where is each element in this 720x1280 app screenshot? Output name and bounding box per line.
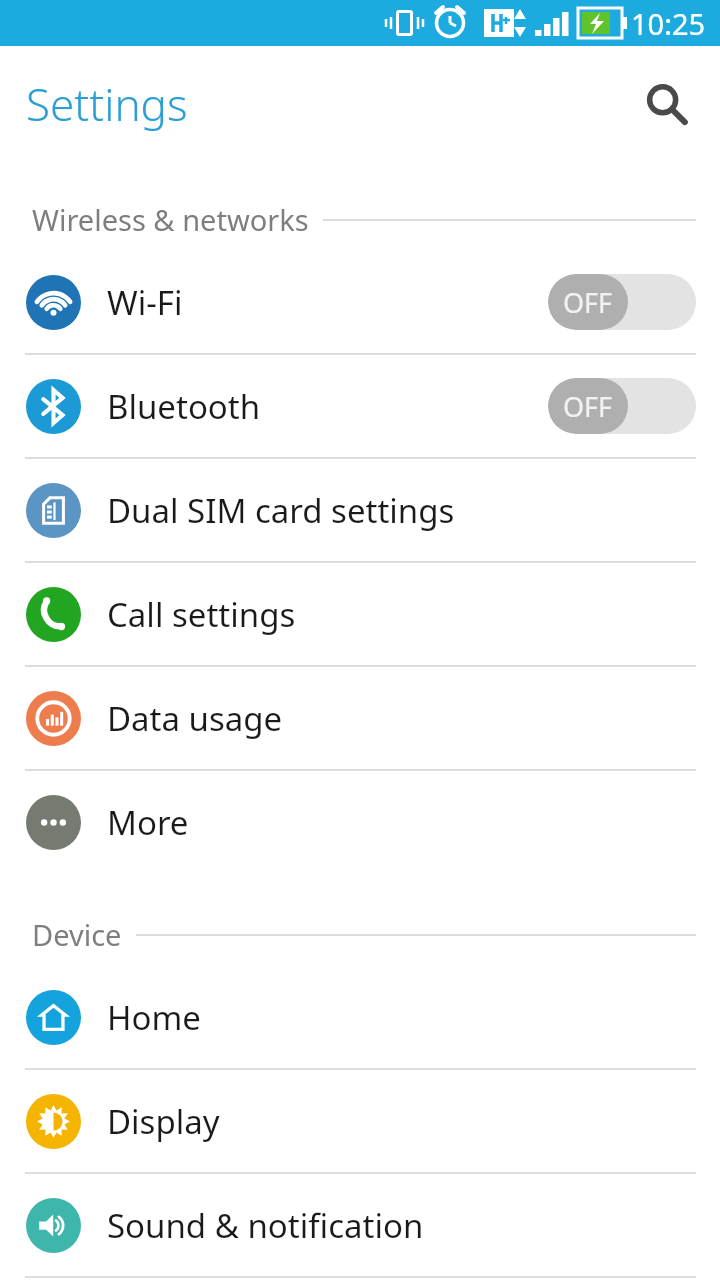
button[interactable]: Wi-Fi	[0, 251, 720, 353]
staticText: Dual SIM card settings	[107, 488, 455, 533]
button[interactable]: Bluetooth	[0, 355, 720, 457]
button[interactable]: Search	[634, 72, 698, 136]
button[interactable]: Home	[0, 966, 720, 1068]
button[interactable]: Dual SIM card settings	[0, 459, 720, 561]
staticText: Wireless & networks	[32, 200, 309, 239]
staticText: Device	[32, 915, 122, 954]
staticText: OFF	[563, 388, 613, 425]
button[interactable]: Call settings	[0, 563, 720, 665]
button[interactable]: OFF	[548, 378, 696, 434]
staticText: Display	[107, 1099, 220, 1144]
staticText: 10:25	[631, 4, 706, 43]
staticText: Home	[107, 995, 201, 1040]
button[interactable]: Sound & notification	[0, 1174, 720, 1276]
staticText: Settings	[26, 74, 188, 134]
staticText: Data usage	[107, 696, 283, 741]
staticText: Sound & notification	[107, 1203, 424, 1248]
staticText: Bluetooth	[107, 384, 261, 429]
staticText: Wi-Fi	[107, 280, 183, 325]
button[interactable]: Display	[0, 1070, 720, 1172]
staticText: Call settings	[107, 592, 296, 637]
staticText: OFF	[563, 284, 613, 321]
button[interactable]: More	[0, 771, 720, 873]
button[interactable]: Data usage	[0, 667, 720, 769]
staticText: More	[107, 800, 189, 845]
button[interactable]: OFF	[548, 274, 696, 330]
